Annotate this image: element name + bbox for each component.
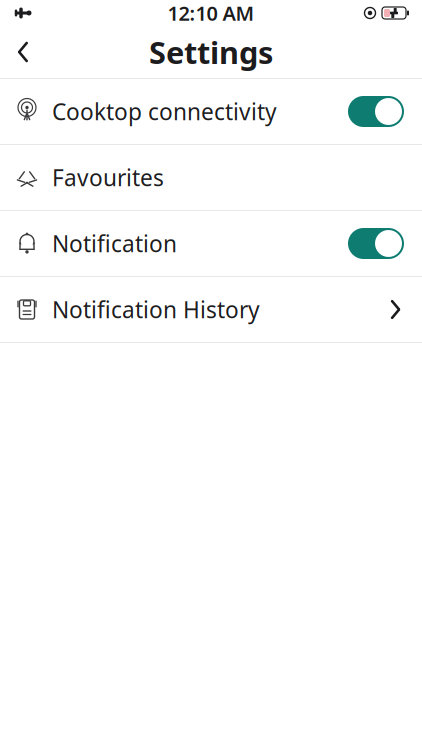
staticText: 12:10 AM <box>167 0 254 26</box>
button[interactable]: Cooktop connectivity <box>0 79 422 145</box>
staticText: Cooktop connectivity <box>52 96 277 126</box>
button[interactable]: Favourites <box>0 145 422 211</box>
staticText: Notification History <box>52 294 260 324</box>
staticText: Favourites <box>52 162 164 192</box>
staticText: Settings <box>149 32 273 72</box>
button[interactable]: Notification History <box>0 277 422 343</box>
button[interactable]: Back <box>0 29 46 75</box>
staticText: Notification <box>52 228 177 258</box>
button[interactable]: Notification <box>0 211 422 277</box>
